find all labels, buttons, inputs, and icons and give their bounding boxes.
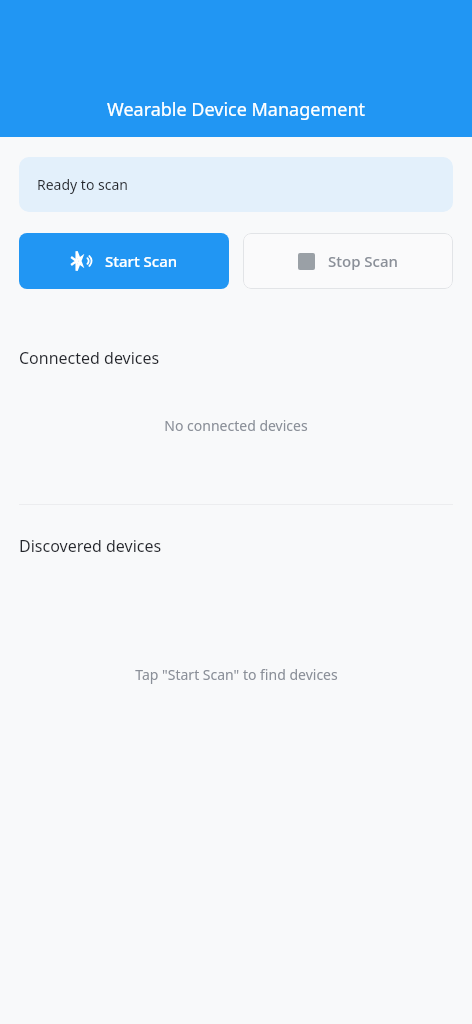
staticText: Start Scan: [105, 251, 178, 271]
staticText: Stop Scan: [328, 251, 398, 271]
staticText: Ready to scan: [37, 175, 128, 194]
other: Bluetooth searching: [70, 250, 92, 272]
staticText: No connected devices: [164, 416, 308, 435]
staticText: Tap "Start Scan" to find devices: [135, 665, 338, 684]
staticText: Discovered devices: [19, 535, 162, 557]
staticText: Connected devices: [19, 347, 160, 369]
staticText: Wearable Device Management: [107, 97, 366, 122]
button[interactable]: Ready to scan: [19, 157, 453, 212]
button[interactable]: Bluetooth searching: [19, 233, 229, 289]
button[interactable]: Stop Scan: [243, 233, 453, 289]
